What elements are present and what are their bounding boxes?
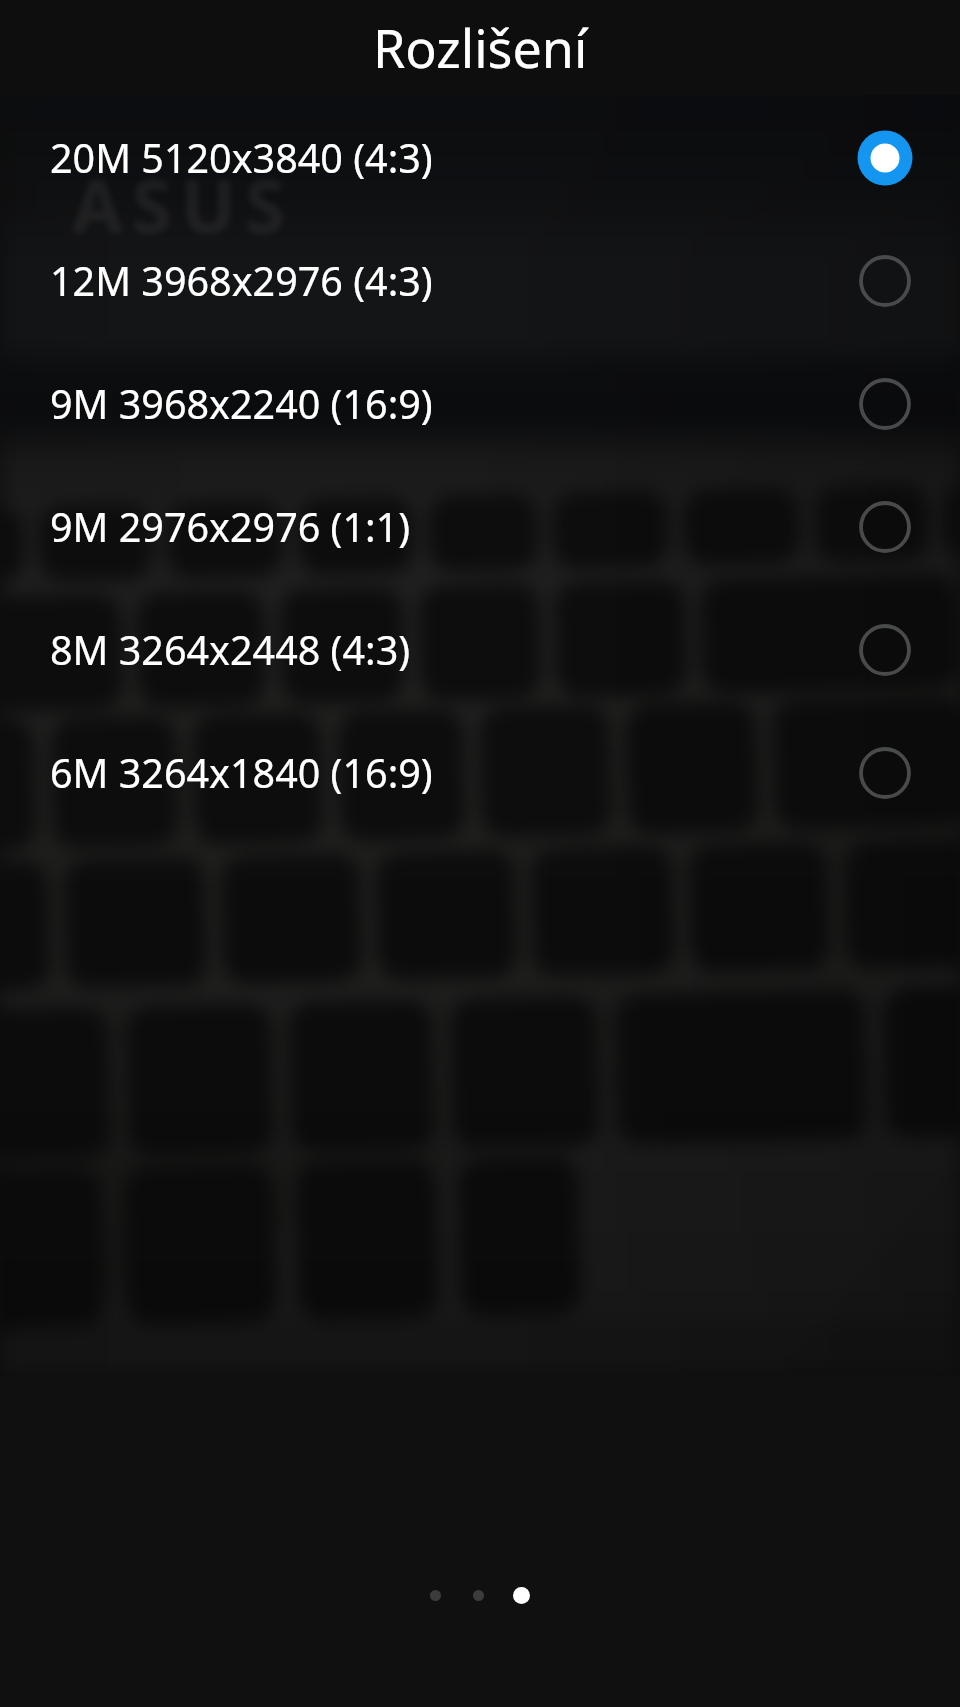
button[interactable]: 9M 2976x2976 (1:1)	[0, 465, 960, 588]
staticText: 20M 5120x3840 (4:3)	[50, 131, 433, 185]
button[interactable]: 12M 3968x2976 (4:3)	[0, 219, 960, 342]
button[interactable]: 9M 3968x2240 (16:9)	[0, 342, 960, 465]
staticText: 8M 3264x2448 (4:3)	[50, 623, 411, 677]
button[interactable]: 20M 5120x3840 (4:3)	[0, 96, 960, 219]
button[interactable]: Page 3, current	[500, 1573, 543, 1617]
staticText: 9M 3968x2240 (16:9)	[50, 377, 433, 431]
button[interactable]: 8M 3264x2448 (4:3)	[0, 588, 960, 711]
button[interactable]: 6M 3264x1840 (16:9)	[0, 711, 960, 834]
staticText: 12M 3968x2976 (4:3)	[50, 254, 433, 308]
button[interactable]: Page 2	[457, 1573, 500, 1617]
staticText: Rozlišení	[373, 12, 588, 83]
staticText: ASUS	[72, 155, 295, 254]
staticText: 6M 3264x1840 (16:9)	[50, 746, 433, 800]
staticText: 9M 2976x2976 (1:1)	[50, 500, 411, 554]
button[interactable]: Page 1	[414, 1573, 457, 1617]
